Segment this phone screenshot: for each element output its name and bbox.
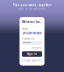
staticText: Sign in xyxy=(27,52,37,56)
staticText: Welcome back xyxy=(22,20,42,24)
staticText: Sign in to continue xyxy=(18,7,46,10)
staticText: Password xyxy=(22,37,34,41)
staticText: Forgot? xyxy=(32,46,42,49)
staticText: •••••••• xyxy=(23,41,31,45)
staticText: Plan your week, together xyxy=(12,3,51,7)
button[interactable]: Forgot? xyxy=(32,46,42,49)
staticText: you@team.app xyxy=(23,31,42,35)
button[interactable]: Create account xyxy=(22,59,42,62)
staticText: Create account xyxy=(22,59,42,62)
staticText: Email xyxy=(22,27,28,31)
button[interactable]: Sign in xyxy=(22,51,42,57)
